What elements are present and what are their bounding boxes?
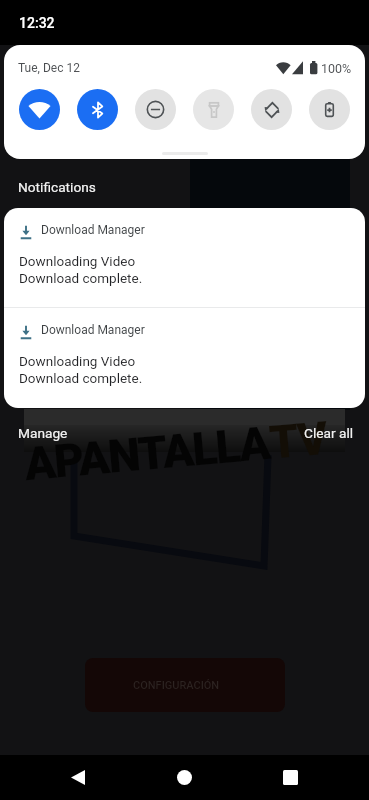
staticText: 12:32: [19, 15, 55, 31]
staticText: Download Manager: [41, 223, 145, 237]
button[interactable]: Back: [55, 755, 100, 800]
staticText: Downloading Video: [19, 353, 136, 369]
button[interactable]: Flashlight: [193, 89, 234, 130]
button[interactable]: Recent apps: [268, 755, 313, 800]
button[interactable]: Download Manager: [4, 308, 365, 408]
staticText: Notifications: [18, 179, 96, 195]
button[interactable]: Wi-Fi: [19, 89, 60, 130]
staticText: Download complete.: [19, 370, 143, 386]
button[interactable]: Do not disturb: [135, 89, 176, 130]
staticText: APANTALLA: [22, 416, 272, 491]
staticText: 100%: [321, 61, 352, 76]
staticText: Downloading Video: [19, 253, 136, 269]
button[interactable]: Notifications: [18, 179, 96, 195]
staticText: TV: [267, 411, 329, 470]
staticText: Download Manager: [41, 323, 145, 337]
staticText: CONFIGURACIÓN: [133, 679, 220, 692]
button[interactable]: Manage: [18, 425, 68, 441]
button[interactable]: Home: [162, 755, 207, 800]
staticText: Tue, Dec 12: [18, 61, 80, 75]
button[interactable]: Download Manager: [4, 208, 365, 307]
button[interactable]: Battery saver: [309, 89, 350, 130]
staticText: Clear all: [304, 425, 354, 441]
button[interactable]: Bluetooth: [77, 89, 118, 130]
button[interactable]: Clear all: [304, 425, 354, 441]
button[interactable]: Auto-rotate: [251, 89, 292, 130]
staticText: Download complete.: [19, 270, 143, 286]
staticText: Manage: [18, 425, 68, 441]
